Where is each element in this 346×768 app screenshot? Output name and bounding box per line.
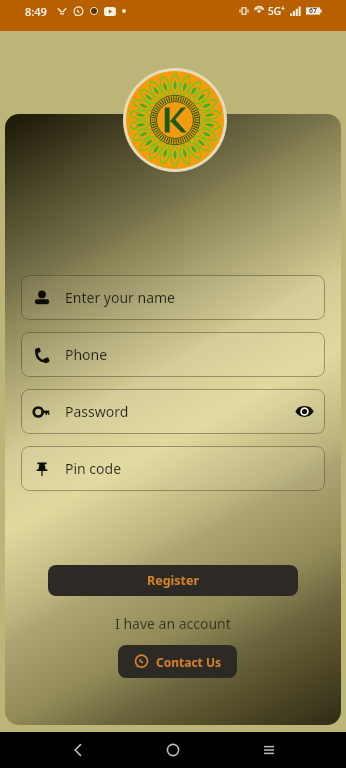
button[interactable]: Register bbox=[48, 565, 298, 596]
staticText: 5G bbox=[268, 4, 281, 18]
staticText: Pin code bbox=[65, 459, 122, 478]
staticText: Phone bbox=[65, 345, 108, 364]
staticText: Register bbox=[147, 572, 200, 589]
staticText: Password bbox=[65, 402, 129, 421]
staticText: I have an account bbox=[115, 614, 231, 633]
button[interactable]: Enter your name bbox=[21, 275, 325, 320]
button[interactable]: Contact Us bbox=[118, 645, 237, 678]
staticText: 8:49 bbox=[25, 4, 47, 19]
button[interactable]: Pin code bbox=[21, 446, 325, 491]
button[interactable]: Password bbox=[21, 389, 325, 434]
button[interactable]: Recent apps bbox=[251, 732, 287, 768]
button[interactable]: Back bbox=[60, 732, 96, 768]
staticText: Enter your name bbox=[65, 288, 175, 307]
staticText: 67 bbox=[309, 6, 318, 16]
button[interactable]: Phone bbox=[21, 332, 325, 377]
staticText: Contact Us bbox=[156, 654, 222, 670]
button[interactable]: Home bbox=[155, 732, 191, 768]
button[interactable]: I have an account bbox=[5, 614, 341, 633]
staticText: + bbox=[281, 4, 286, 14]
